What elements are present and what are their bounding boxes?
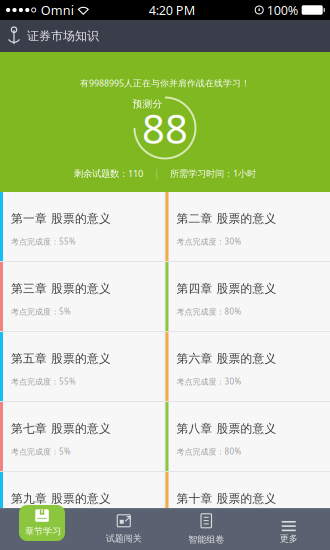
button[interactable]: 第七章 股票的意义	[0, 402, 164, 471]
staticText: 第八章 股票的意义	[176, 421, 276, 436]
button[interactable]: 试题闯关	[82, 509, 165, 550]
button[interactable]: 第八章 股票的意义	[165, 402, 330, 471]
staticText: 考点完成度：30%	[176, 516, 241, 527]
staticText: Omni	[41, 1, 74, 19]
staticText: 试题闯关	[106, 533, 142, 544]
button[interactable]: 第九章 股票的意义	[0, 472, 164, 541]
button[interactable]: 第五章 股票的意义	[0, 332, 164, 401]
button[interactable]: 第三章 股票的意义	[0, 262, 164, 331]
button[interactable]: 章节学习	[19, 505, 65, 541]
button[interactable]: 第四章 股票的意义	[165, 262, 330, 331]
staticText: 考点完成度：55%	[11, 376, 76, 387]
staticText: 第六章 股票的意义	[176, 351, 276, 366]
staticText: 所需学习时间：1小时	[170, 167, 256, 179]
staticText: 第一章 股票的意义	[11, 211, 111, 226]
staticText: 第十章 股票的意义	[176, 491, 276, 506]
staticText: 预测分	[132, 98, 162, 110]
staticText: 智能组卷	[188, 534, 224, 545]
staticText: 考点完成度：80%	[176, 306, 241, 317]
staticText: 4:20 PM	[149, 1, 195, 19]
staticText: 考点完成度：30%	[176, 236, 241, 247]
staticText: 考点完成度：30%	[176, 376, 241, 387]
staticText: 剩余试题数：110	[74, 167, 143, 180]
staticText: 章节学习	[25, 525, 61, 537]
staticText: 第七章 股票的意义	[11, 421, 111, 436]
button[interactable]: 第二章 股票的意义	[165, 192, 330, 261]
staticText: 第四章 股票的意义	[176, 281, 276, 296]
staticText: 有9988995人正在与你并肩作战在线学习！	[80, 77, 250, 89]
staticText: 第五章 股票的意义	[11, 351, 111, 366]
staticText: 更多	[280, 533, 298, 544]
staticText: 100%	[267, 1, 299, 19]
staticText: 证券市场知识	[27, 28, 99, 43]
staticText: 第二章 股票的意义	[176, 211, 276, 226]
button[interactable]: 第一章 股票的意义	[0, 192, 164, 261]
staticText: 考点完成度：5%	[11, 306, 71, 317]
button[interactable]: 第十章 股票的意义	[165, 472, 330, 541]
staticText: 88	[142, 101, 188, 155]
staticText: |	[154, 167, 159, 180]
staticText: 第九章 股票的意义	[11, 491, 111, 506]
staticText: 考点完成度：5%	[11, 446, 71, 457]
button[interactable]: 更多	[247, 509, 330, 550]
button[interactable]: 智能组卷	[165, 509, 247, 550]
staticText: 第三章 股票的意义	[11, 281, 111, 296]
staticText: 考点完成度：55%	[11, 236, 76, 247]
staticText: 考点完成度：80%	[176, 446, 241, 457]
staticText: 考点完成度：55%	[11, 516, 76, 527]
button[interactable]: 第六章 股票的意义	[165, 332, 330, 401]
